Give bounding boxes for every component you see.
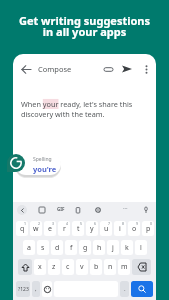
staticText: r [63,224,66,234]
button[interactable]: Previous [17,205,27,215]
button[interactable]: Search [131,281,153,297]
button[interactable]: GIF [57,206,65,212]
staticText: 1 [24,221,27,226]
staticText: i [119,224,121,234]
staticText: 7 [108,221,111,226]
staticText: t [77,224,80,234]
staticText: 4 [66,221,69,226]
button[interactable]: z [48,259,60,275]
staticText: GIF [57,206,65,212]
staticText: e [48,224,52,234]
staticText: 5 [80,221,83,226]
button[interactable]: u [100,221,112,236]
button[interactable]: f [65,240,77,255]
staticText: h [97,243,102,253]
button[interactable]: b [90,259,102,275]
staticText: ••• [123,206,128,211]
button[interactable]: Backspace [132,259,151,275]
button[interactable]: Voice input [141,205,151,215]
button[interactable]: , [32,281,40,297]
button[interactable]: ?123 [16,281,30,297]
staticText: z [52,262,56,272]
staticText: 6 [94,221,97,226]
staticText: d [55,243,60,253]
button[interactable]: w [30,221,42,236]
button[interactable]: Back [18,61,34,77]
staticText: j [112,243,114,253]
button[interactable]: Settings [93,205,103,215]
button[interactable]: c [62,259,74,275]
button[interactable]: g [79,240,91,255]
staticText: , [35,285,37,293]
button[interactable]: Shift [18,259,32,275]
staticText: x [38,262,42,272]
staticText: q [20,224,25,234]
button[interactable]: v [76,259,88,275]
button[interactable]: Stickers [37,205,47,215]
staticText: g [83,243,88,253]
staticText: . [124,285,126,293]
button[interactable]: Attach [100,61,116,77]
staticText: ?123 [18,286,29,293]
staticText: y [90,224,94,234]
staticText: 9 [136,221,139,226]
button[interactable]: m [118,259,130,275]
button[interactable]: n [104,259,116,275]
button[interactable]: Spelling [15,153,61,175]
button[interactable]: q [16,221,28,236]
button[interactable]: r [58,221,70,236]
staticText: m [121,262,128,272]
staticText: you're [33,164,57,174]
staticText: Get writing suggestions in all your apps [0,13,169,39]
button[interactable]: a [23,240,35,255]
button[interactable]: i [114,221,126,236]
staticText: 3 [52,221,55,226]
staticText: f [70,243,73,253]
button[interactable]: . [120,281,129,297]
button[interactable]: l [135,240,147,255]
button[interactable]: s [37,240,49,255]
staticText: Spelling [33,156,52,163]
other: Grammarly [7,154,25,172]
staticText: p [146,224,151,234]
button[interactable]: d [51,240,63,255]
staticText: w [33,224,39,234]
staticText: c [66,262,70,272]
staticText: o [132,224,137,234]
button[interactable]: k [121,240,133,255]
staticText: 2 [38,221,41,226]
staticText: u [104,224,109,234]
button[interactable]: x [34,259,46,275]
button[interactable]: Send [119,61,135,77]
button[interactable]: Emoji [42,281,52,297]
staticText: a [27,243,31,253]
staticText: Compose [38,64,72,74]
staticText: l [140,243,142,253]
button[interactable]: o [128,221,140,236]
button[interactable]: Clipboard [73,205,83,215]
staticText: 0 [150,221,153,226]
button[interactable]: y [86,221,98,236]
button[interactable]: h [93,240,105,255]
button[interactable]: e [44,221,56,236]
staticText: When your ready, let's share this discov… [21,99,142,119]
staticText: v [80,262,84,272]
staticText: n [108,262,113,272]
button[interactable]: t [72,221,84,236]
button[interactable]: p [142,221,154,236]
staticText: 8 [122,221,125,226]
staticText: s [41,243,45,253]
button[interactable]: More options [138,61,154,77]
staticText: b [94,262,99,272]
button[interactable]: j [107,240,119,255]
staticText: k [125,243,129,253]
button[interactable]: ••• [123,206,128,211]
